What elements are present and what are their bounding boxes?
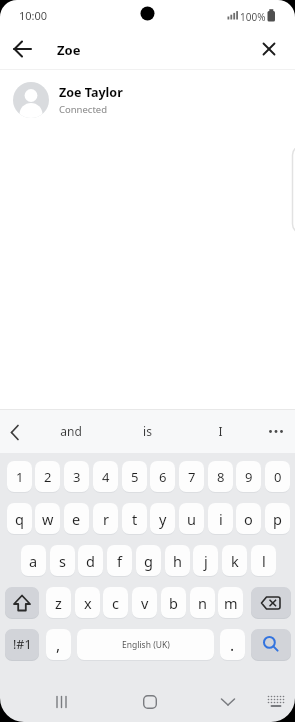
button[interactable]: is bbox=[126, 411, 168, 451]
staticText: n bbox=[198, 593, 207, 613]
button[interactable]: l bbox=[251, 545, 276, 576]
button[interactable]: 3 bbox=[64, 461, 89, 492]
button[interactable]: i bbox=[208, 503, 233, 534]
button[interactable]: c bbox=[103, 587, 128, 618]
staticText: u bbox=[187, 509, 196, 529]
button[interactable]: and bbox=[50, 411, 92, 451]
button[interactable]: 0 bbox=[265, 461, 290, 492]
staticText: f bbox=[117, 551, 122, 571]
staticText: 7 bbox=[188, 468, 196, 486]
button[interactable]: f bbox=[107, 545, 132, 576]
button[interactable]: r bbox=[93, 503, 118, 534]
staticText: 9 bbox=[245, 468, 253, 486]
staticText: !#1 bbox=[13, 636, 32, 653]
staticText: t bbox=[132, 509, 138, 529]
staticText: w bbox=[42, 509, 54, 529]
button[interactable]: , bbox=[46, 629, 71, 660]
button[interactable]: 1 bbox=[7, 461, 32, 492]
button[interactable]: y bbox=[150, 503, 175, 534]
button[interactable]: s bbox=[50, 545, 75, 576]
button[interactable]: 4 bbox=[93, 461, 118, 492]
button[interactable]: e bbox=[64, 503, 89, 534]
button[interactable]: 9 bbox=[236, 461, 261, 492]
button[interactable]: English (UK) bbox=[77, 629, 214, 660]
button[interactable]: o bbox=[236, 503, 261, 534]
staticText: 5 bbox=[131, 468, 139, 486]
button[interactable]: !#1 bbox=[5, 629, 39, 660]
staticText: k bbox=[231, 551, 239, 571]
button[interactable]: z bbox=[46, 587, 71, 618]
staticText: o bbox=[244, 509, 253, 529]
staticText: 0 bbox=[274, 468, 282, 486]
button[interactable]: Zoe Taylor bbox=[0, 80, 295, 120]
staticText: m bbox=[224, 593, 238, 613]
button[interactable]: . bbox=[220, 629, 245, 660]
staticText: 2 bbox=[44, 468, 52, 486]
staticText: q bbox=[15, 509, 24, 529]
staticText: 4 bbox=[102, 468, 110, 486]
button[interactable] bbox=[258, 687, 294, 717]
button[interactable]: g bbox=[136, 545, 161, 576]
staticText: 10:00 bbox=[19, 8, 48, 23]
button[interactable]: a bbox=[21, 545, 46, 576]
staticText: z bbox=[55, 593, 62, 613]
staticText: a bbox=[29, 551, 38, 571]
button[interactable]: 8 bbox=[208, 461, 233, 492]
staticText: r bbox=[103, 509, 109, 529]
staticText: s bbox=[59, 551, 66, 571]
staticText: e bbox=[72, 509, 81, 529]
staticText: and bbox=[60, 423, 82, 439]
button[interactable]: k bbox=[222, 545, 247, 576]
staticText: 3 bbox=[73, 468, 81, 486]
staticText: x bbox=[84, 593, 92, 613]
button[interactable]: h bbox=[165, 545, 190, 576]
button[interactable] bbox=[251, 629, 291, 660]
button[interactable] bbox=[130, 687, 170, 717]
button[interactable] bbox=[251, 587, 291, 618]
button[interactable]: p bbox=[265, 503, 290, 534]
button[interactable]: m bbox=[218, 587, 243, 618]
button[interactable] bbox=[250, 30, 288, 68]
button[interactable] bbox=[42, 687, 82, 717]
button[interactable]: b bbox=[161, 587, 186, 618]
button[interactable]: j bbox=[193, 545, 218, 576]
button[interactable] bbox=[4, 30, 42, 68]
button[interactable]: v bbox=[132, 587, 157, 618]
button[interactable]: 6 bbox=[150, 461, 175, 492]
button[interactable]: 2 bbox=[35, 461, 60, 492]
staticText: g bbox=[144, 551, 153, 571]
button[interactable]: w bbox=[35, 503, 60, 534]
button[interactable]: x bbox=[75, 587, 100, 618]
staticText: l bbox=[262, 551, 266, 571]
staticText: 6 bbox=[159, 468, 167, 486]
staticText: , bbox=[56, 634, 61, 655]
button[interactable]: u bbox=[179, 503, 204, 534]
button[interactable]: d bbox=[78, 545, 103, 576]
button[interactable]: n bbox=[190, 587, 215, 618]
staticText: d bbox=[86, 551, 95, 571]
staticText: is bbox=[143, 423, 152, 439]
button[interactable]: t bbox=[122, 503, 147, 534]
staticText: b bbox=[169, 593, 178, 613]
staticText: I bbox=[218, 423, 223, 439]
staticText: Zoe Taylor bbox=[59, 84, 123, 101]
staticText: Connected bbox=[59, 103, 108, 116]
button[interactable] bbox=[208, 687, 248, 717]
button[interactable]: I bbox=[199, 411, 241, 451]
staticText: English (UK) bbox=[122, 639, 170, 651]
button[interactable]: 5 bbox=[122, 461, 147, 492]
staticText: c bbox=[112, 593, 119, 613]
staticText: v bbox=[141, 593, 149, 613]
button[interactable] bbox=[5, 587, 39, 618]
button[interactable]: 7 bbox=[179, 461, 204, 492]
button[interactable] bbox=[0, 411, 30, 451]
staticText: 1 bbox=[16, 468, 24, 486]
staticText: j bbox=[204, 551, 208, 571]
staticText: 100% bbox=[240, 10, 266, 24]
staticText: . bbox=[230, 634, 235, 655]
staticText: p bbox=[273, 509, 282, 529]
staticText: y bbox=[159, 509, 167, 529]
staticText: 8 bbox=[217, 468, 225, 486]
staticText: i bbox=[219, 509, 223, 529]
button[interactable]: q bbox=[7, 503, 32, 534]
